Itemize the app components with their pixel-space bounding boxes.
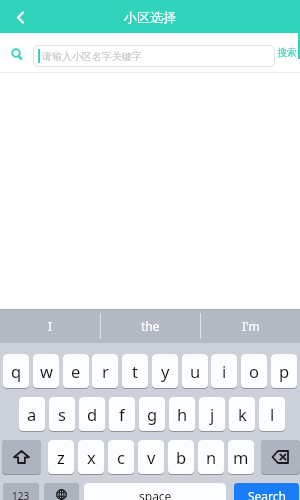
button[interactable]: the [101,309,200,343]
staticText: e [71,360,81,382]
staticText: I [48,318,53,334]
button[interactable] [2,440,41,474]
staticText: u [190,360,201,382]
button[interactable]: i [211,354,237,388]
button[interactable]: 请输入小区名字关键字 [34,46,274,66]
button[interactable]: I'm [201,309,300,343]
button[interactable]: Search [234,483,299,500]
button[interactable]: f [109,397,135,431]
staticText: a [27,403,37,425]
button[interactable]: p [271,354,297,388]
button[interactable]: I [0,309,100,343]
button[interactable] [261,440,300,474]
staticText: space [139,488,172,500]
button[interactable]: z [48,440,74,474]
button[interactable]: e [63,354,89,388]
staticText: h [177,403,188,425]
staticText: l [270,403,275,425]
staticText: s [58,403,66,425]
staticText: j [210,403,215,425]
button[interactable]: t [122,354,148,388]
button[interactable] [44,483,79,500]
button[interactable]: d [79,397,105,431]
button[interactable]: l [259,397,285,431]
staticText: x [87,446,96,468]
button[interactable]: 123 [3,483,39,500]
button[interactable]: k [229,397,255,431]
staticText: y [161,360,170,382]
staticText: q [11,360,22,382]
button[interactable]: n [198,440,224,474]
staticText: c [117,446,125,468]
button[interactable]: m [228,440,254,474]
staticText: b [176,446,187,468]
staticText: z [57,446,65,468]
staticText: g [147,403,158,425]
button[interactable]: w [33,354,59,388]
staticText: f [119,403,125,425]
button[interactable]: x [78,440,104,474]
button[interactable]: y [152,354,178,388]
staticText: 请输入小区名字关键字 [42,50,142,63]
staticText: 搜索 [277,46,297,59]
button[interactable]: v [138,440,164,474]
staticText: Search [248,488,286,500]
staticText: t [132,360,138,382]
button[interactable] [11,8,29,26]
staticText: d [87,403,98,425]
staticText: m [233,446,249,468]
staticText: v [147,446,156,468]
button[interactable]: r [92,354,118,388]
staticText: p [279,360,290,382]
staticText: I'm [242,318,260,334]
button[interactable]: o [241,354,267,388]
staticText: i [222,360,227,382]
staticText: 小区选择 [124,9,176,25]
staticText: o [249,360,259,382]
staticText: 123 [12,489,30,500]
button[interactable]: a [19,397,45,431]
button[interactable]: 搜索 [274,33,300,72]
button[interactable]: j [199,397,225,431]
button[interactable]: u [182,354,208,388]
staticText: r [102,360,109,382]
button[interactable]: s [49,397,75,431]
staticText: k [238,403,247,425]
button[interactable]: h [169,397,195,431]
staticText: the [141,318,160,334]
button[interactable]: space [84,483,226,500]
button[interactable]: g [139,397,165,431]
button[interactable]: q [3,354,29,388]
button[interactable]: b [168,440,194,474]
staticText: n [206,446,217,468]
staticText: w [40,360,53,382]
button[interactable]: c [108,440,134,474]
